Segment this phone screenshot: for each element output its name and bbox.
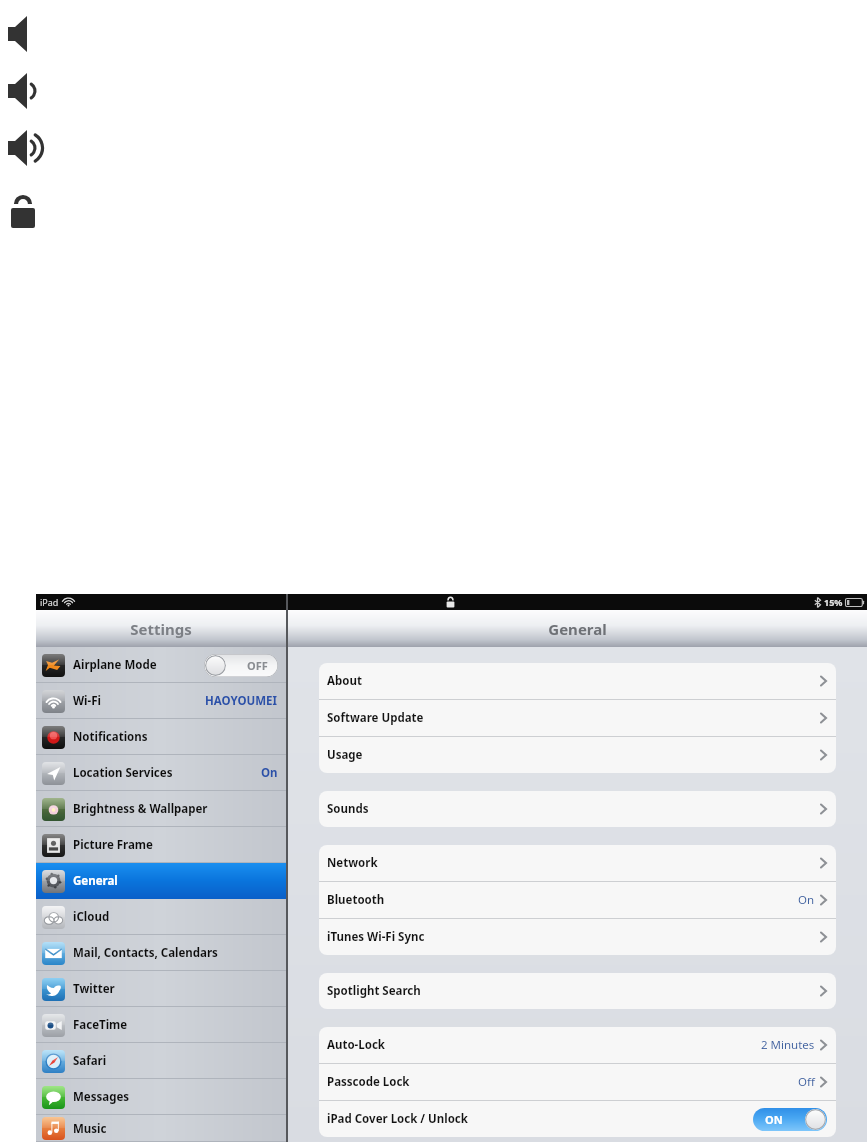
staticText: General bbox=[548, 619, 607, 639]
button[interactable]: Location Services bbox=[36, 755, 286, 791]
staticText: Bluetooth bbox=[327, 892, 385, 908]
button[interactable]: iCloud bbox=[36, 899, 286, 935]
button[interactable]: iPad Cover Lock / Unlock on bbox=[753, 1108, 827, 1131]
button[interactable]: Airplane Mode off bbox=[204, 654, 278, 677]
button[interactable]: FaceTime bbox=[36, 1007, 286, 1043]
staticText: Sounds bbox=[327, 801, 369, 817]
button[interactable]: Brightness & Wallpaper bbox=[36, 791, 286, 827]
button[interactable]: Sounds bbox=[319, 791, 836, 827]
staticText: iPad bbox=[40, 596, 59, 608]
staticText: Spotlight Search bbox=[327, 983, 421, 999]
staticText: Wi-Fi bbox=[73, 693, 101, 709]
staticText: Passcode Lock bbox=[327, 1074, 410, 1090]
staticText: FaceTime bbox=[73, 1017, 128, 1033]
staticText: On bbox=[798, 892, 815, 908]
button[interactable]: Notifications bbox=[36, 719, 286, 755]
staticText: Usage bbox=[327, 747, 363, 763]
staticText: Software Update bbox=[327, 710, 424, 726]
staticText: iCloud bbox=[73, 909, 110, 925]
staticText: Auto-Lock bbox=[327, 1037, 385, 1053]
button[interactable]: Airplane Mode bbox=[36, 647, 286, 683]
staticText: Location Services bbox=[73, 765, 173, 781]
button[interactable]: Safari bbox=[36, 1043, 286, 1079]
button[interactable]: Passcode Lock bbox=[319, 1064, 836, 1100]
button[interactable]: Spotlight Search bbox=[319, 973, 836, 1009]
staticText: Airplane Mode bbox=[73, 657, 157, 673]
staticText: On bbox=[261, 765, 278, 781]
staticText: Mail, Contacts, Calendars bbox=[73, 945, 218, 961]
button[interactable]: Music bbox=[36, 1115, 286, 1142]
button[interactable]: Usage bbox=[319, 737, 836, 773]
staticText: 15% bbox=[824, 596, 843, 608]
staticText: Notifications bbox=[73, 729, 148, 745]
staticText: About bbox=[327, 673, 362, 689]
staticText: Safari bbox=[73, 1053, 107, 1069]
staticText: OFF bbox=[247, 658, 268, 673]
button[interactable]: Messages bbox=[36, 1079, 286, 1115]
button[interactable]: Bluetooth bbox=[319, 882, 836, 918]
button[interactable]: About bbox=[319, 663, 836, 699]
staticText: Settings bbox=[130, 619, 192, 639]
staticText: iTunes Wi-Fi Sync bbox=[327, 929, 425, 945]
button[interactable]: Twitter bbox=[36, 971, 286, 1007]
staticText: General bbox=[73, 873, 118, 889]
button[interactable]: Software Update bbox=[319, 700, 836, 736]
staticText: Network bbox=[327, 855, 378, 871]
button[interactable]: Network bbox=[319, 845, 836, 881]
staticText: Off bbox=[798, 1074, 815, 1090]
staticText: ON bbox=[765, 1112, 783, 1127]
button[interactable]: Wi-Fi bbox=[36, 683, 286, 719]
button[interactable]: Auto-Lock bbox=[319, 1027, 836, 1063]
staticText: Twitter bbox=[73, 981, 115, 997]
staticText: 2 Minutes bbox=[761, 1037, 815, 1053]
button[interactable]: iPad Cover Lock / Unlock bbox=[319, 1101, 836, 1137]
button[interactable]: General bbox=[36, 863, 286, 899]
button[interactable]: Picture Frame bbox=[36, 827, 286, 863]
staticText: Music bbox=[73, 1121, 107, 1137]
button[interactable]: Mail, Contacts, Calendars bbox=[36, 935, 286, 971]
staticText: Messages bbox=[73, 1089, 130, 1105]
staticText: HAOYOUMEI bbox=[205, 693, 278, 709]
staticText: iPad Cover Lock / Unlock bbox=[327, 1111, 468, 1127]
staticText: Brightness & Wallpaper bbox=[73, 801, 208, 817]
staticText: Picture Frame bbox=[73, 837, 153, 853]
button[interactable]: iTunes Wi-Fi Sync bbox=[319, 919, 836, 955]
